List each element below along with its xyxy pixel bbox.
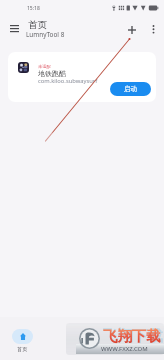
staticText: 未适配 (38, 64, 51, 69)
button[interactable]: Menu (4, 18, 24, 38)
staticText: com.kiloo.subwaysurf (38, 77, 98, 85)
staticText: 启动 (124, 85, 137, 93)
staticText: LumnyTool 8 (26, 30, 65, 39)
button[interactable]: 启动 (110, 82, 151, 96)
button[interactable]: More options (144, 20, 163, 39)
staticText: 飞翔下载 (103, 327, 163, 346)
staticText: 首页 (28, 19, 47, 31)
staticText: 飞翔下载 (103, 327, 161, 345)
staticText: WWW.FXXZ.COM (101, 345, 148, 353)
staticText: 地铁跑酷 (38, 69, 66, 78)
staticText: 15:18 (27, 5, 40, 12)
button[interactable]: 首页 (12, 329, 33, 353)
button[interactable]: Add (122, 20, 141, 39)
button[interactable]: 未适配 (8, 52, 156, 102)
staticText: 首页 (17, 346, 28, 353)
